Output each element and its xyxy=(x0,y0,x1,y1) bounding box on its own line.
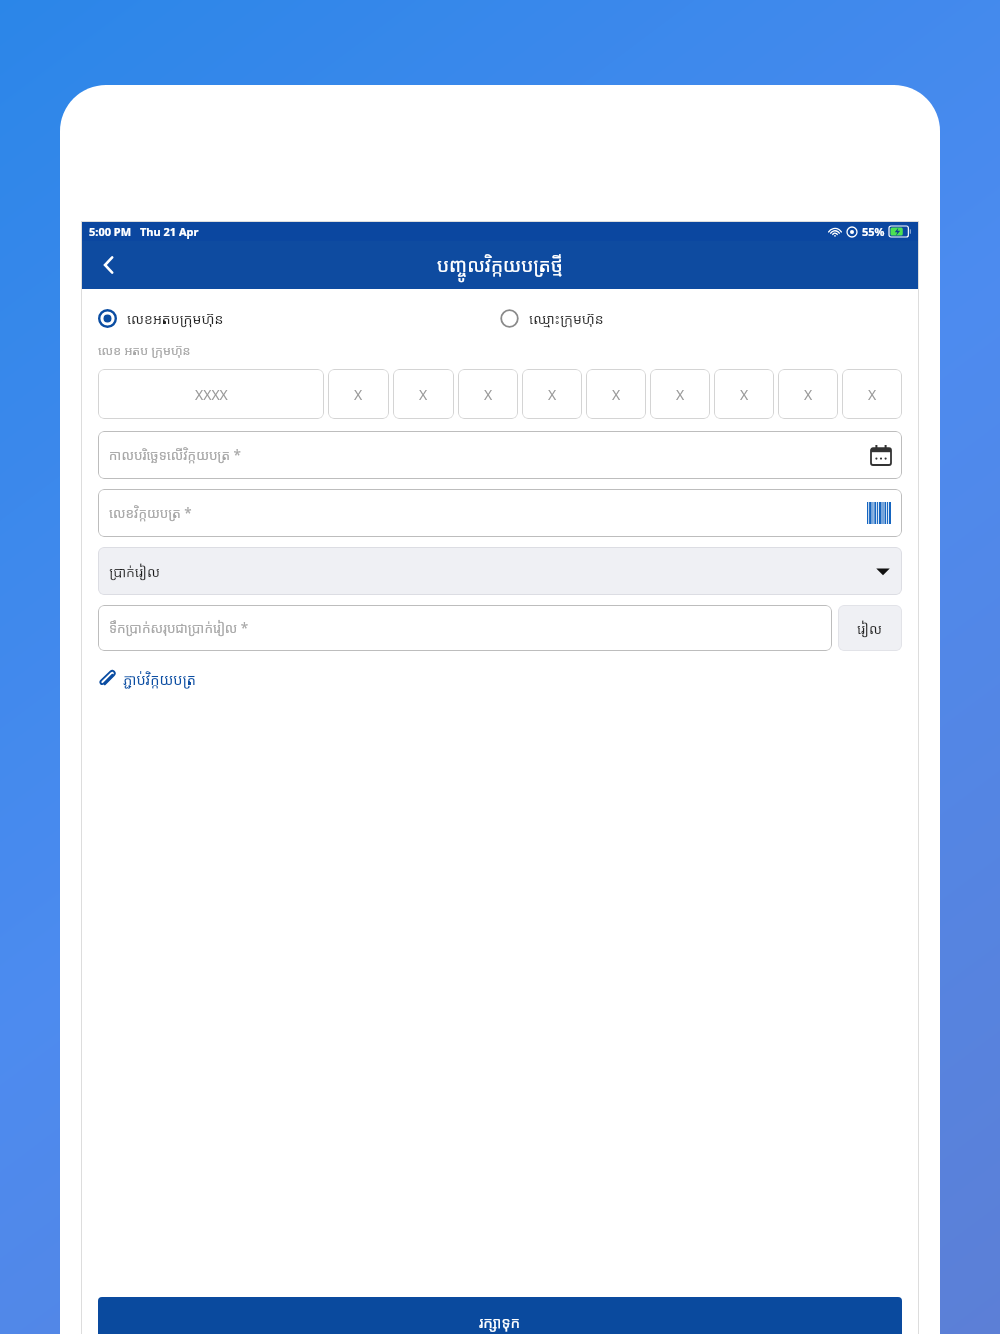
staticText: ឈ្មោះក្រុមហ៊ុន xyxy=(529,309,604,328)
staticText: X xyxy=(548,385,557,404)
staticText: X xyxy=(804,385,813,404)
staticText: X xyxy=(612,385,621,404)
staticText: X xyxy=(354,385,363,404)
staticText: កាលបរិច្ឆេទលើវិក្កយបត្រ * xyxy=(109,446,241,464)
button[interactable]: រក្សាទុក xyxy=(98,1297,902,1334)
button[interactable]: X xyxy=(393,369,454,419)
staticText: X xyxy=(676,385,685,404)
staticText: លេខ អតប ក្រុមហ៊ុន xyxy=(98,342,191,359)
button[interactable]: រៀល xyxy=(838,605,902,651)
button[interactable]: ឈ្មោះក្រុមហ៊ុន xyxy=(500,309,902,328)
staticText: X xyxy=(868,385,877,404)
button[interactable]: ប្រាក់រៀល xyxy=(98,547,902,595)
button[interactable]: លេខវិក្កយបត្រ * xyxy=(98,489,902,537)
staticText: រៀល xyxy=(857,619,883,638)
staticText: ប្រាក់រៀល xyxy=(109,562,160,581)
button[interactable]: X xyxy=(778,369,838,419)
button[interactable]: X xyxy=(328,369,389,419)
staticText: 5:00 PM xyxy=(89,224,132,239)
staticText: លេខអតបក្រុមហ៊ុន xyxy=(127,309,224,328)
button[interactable]: X xyxy=(650,369,710,419)
button[interactable]: X xyxy=(842,369,902,419)
button[interactable]: Back xyxy=(89,245,129,285)
button[interactable]: X xyxy=(586,369,646,419)
other: Open dropdown xyxy=(875,563,891,579)
button[interactable]: X xyxy=(458,369,518,419)
button[interactable]: កាលបរិច្ឆេទលើវិក្កយបត្រ * xyxy=(98,431,902,479)
other: Scan barcode xyxy=(867,502,891,524)
staticText: X xyxy=(740,385,749,404)
button[interactable]: ភ្ជាប់វិក្កយបត្រ xyxy=(98,669,196,689)
staticText: ទឹកប្រាក់សរុបជាប្រាក់រៀល * xyxy=(109,619,249,637)
staticText: X xyxy=(484,385,493,404)
button[interactable]: X xyxy=(522,369,582,419)
staticText: លេខវិក្កយបត្រ * xyxy=(109,504,192,522)
staticText: X xyxy=(419,385,428,404)
button[interactable]: XXXX xyxy=(98,369,324,419)
staticText: 55% xyxy=(862,224,885,239)
button[interactable]: លេខអតបក្រុមហ៊ុន xyxy=(98,309,500,328)
staticText: បញ្ចូលវិក្កយបត្រថ្មី xyxy=(437,252,563,278)
button[interactable]: X xyxy=(714,369,774,419)
staticText: Thu 21 Apr xyxy=(140,224,199,239)
staticText: ភ្ជាប់វិក្កយបត្រ xyxy=(123,669,196,689)
staticText: រក្សាទុក xyxy=(479,1312,521,1332)
button[interactable]: ទឹកប្រាក់សរុបជាប្រាក់រៀល * xyxy=(98,605,832,651)
staticText: XXXX xyxy=(195,385,228,404)
other: Pick date xyxy=(871,445,891,465)
